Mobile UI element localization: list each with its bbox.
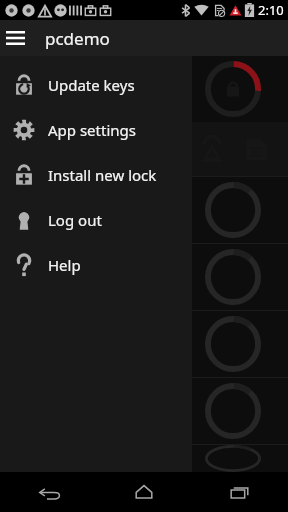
staticText: App settings [48, 120, 136, 140]
button[interactable]: Help [0, 242, 192, 287]
button[interactable]: Log out [0, 197, 192, 242]
button[interactable]: Open navigation drawer [0, 20, 30, 56]
staticText: Install new lock [48, 165, 157, 185]
staticText: pcdemo [45, 27, 110, 50]
staticText: 2:10 [258, 1, 284, 19]
button[interactable] [0, 445, 288, 472]
button[interactable] [0, 244, 288, 310]
button[interactable]: Update keys [0, 62, 192, 107]
staticText: Help [48, 255, 81, 275]
button[interactable] [0, 311, 288, 377]
button[interactable] [0, 56, 288, 122]
button[interactable]: Install new lock [0, 152, 192, 197]
button[interactable] [0, 378, 288, 444]
staticText: Log out [48, 210, 102, 230]
button[interactable]: App settings [0, 107, 192, 152]
button[interactable]: Back [0, 472, 96, 512]
staticText: Update keys [48, 75, 135, 95]
button[interactable]: Home [96, 472, 192, 512]
button[interactable] [0, 177, 288, 243]
button[interactable]: Recents [192, 472, 288, 512]
